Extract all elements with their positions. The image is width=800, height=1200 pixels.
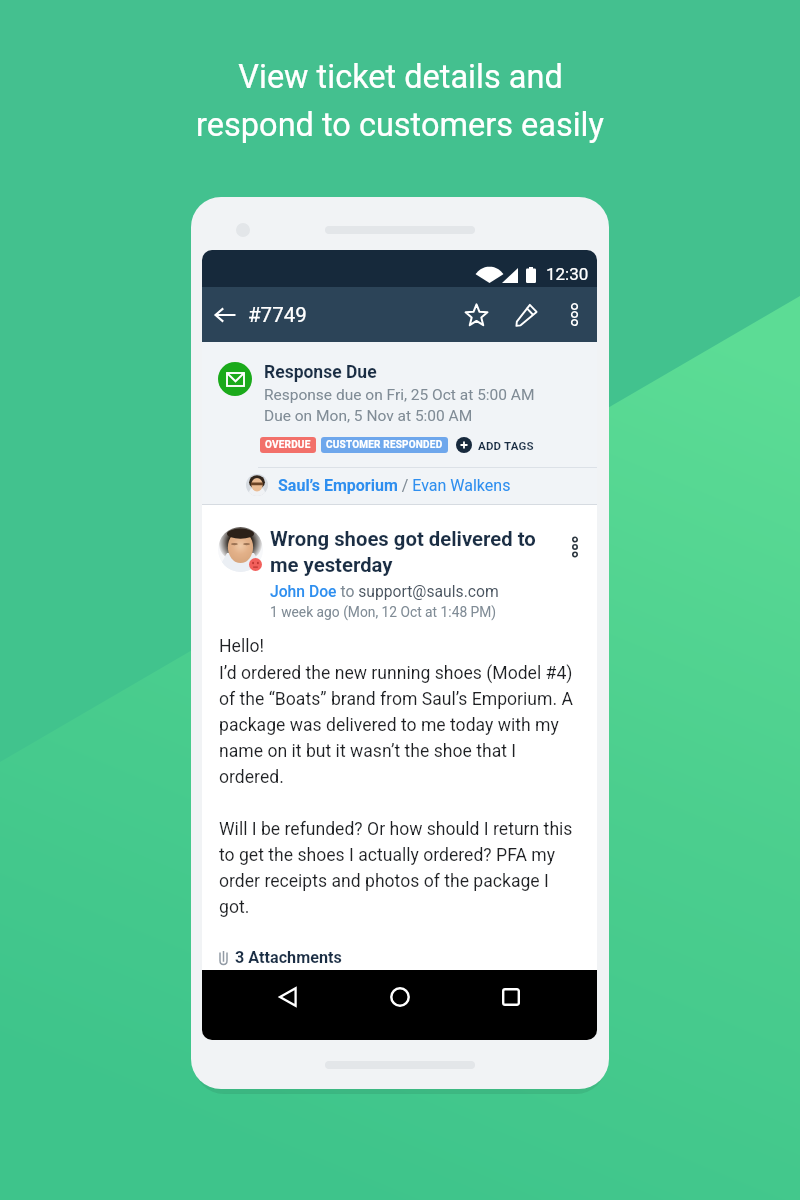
button[interactable]: Saul’s Emporium / Evan Walkens bbox=[202, 468, 597, 504]
staticText: OVERDUE bbox=[265, 439, 311, 451]
staticText: Due on Mon, 5 Nov at 5:00 AM bbox=[264, 407, 473, 425]
button[interactable]: Message options bbox=[561, 527, 589, 567]
button[interactable]: Edit bbox=[501, 287, 551, 342]
button[interactable]: ADD TAGS bbox=[456, 437, 534, 453]
button[interactable]: CUSTOMER RESPONDED bbox=[321, 437, 448, 453]
staticText: 1 week ago (Mon, 12 Oct at 1:48 PM) bbox=[270, 604, 497, 620]
staticText: Response Due bbox=[264, 362, 377, 383]
staticText: respond to customers easily bbox=[196, 106, 604, 144]
staticText: ADD TAGS bbox=[478, 439, 534, 452]
staticText: Hello! I’d ordered the new running shoes… bbox=[219, 636, 573, 917]
button[interactable]: More options bbox=[551, 287, 597, 342]
staticText: View ticket details and bbox=[238, 58, 563, 96]
staticText: Saul’s Emporium / Evan Walkens bbox=[278, 476, 511, 495]
button[interactable]: Back bbox=[202, 287, 248, 342]
staticText: 3 Attachments bbox=[235, 948, 342, 967]
staticText: John Doe to support@sauls.com bbox=[270, 582, 499, 600]
button[interactable]: Back bbox=[262, 971, 314, 1023]
staticText: CUSTOMER RESPONDED bbox=[326, 439, 443, 451]
button[interactable]: OVERDUE bbox=[260, 437, 316, 453]
button[interactable]: Home bbox=[374, 971, 426, 1023]
staticText: 12:30 bbox=[546, 264, 589, 284]
button[interactable]: 3 Attachments bbox=[202, 948, 342, 967]
button[interactable]: Recents bbox=[485, 971, 537, 1023]
staticText: Response due on Fri, 25 Oct at 5:00 AM bbox=[264, 386, 535, 404]
staticText: Wrong shoes got delivered to me yesterda… bbox=[270, 527, 536, 577]
staticText: #7749 bbox=[248, 303, 307, 327]
button[interactable]: Star bbox=[451, 287, 501, 342]
